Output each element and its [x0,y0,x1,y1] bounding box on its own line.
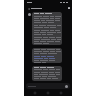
button[interactable]: Back [33,91,37,95]
button[interactable]: Recents [59,91,63,95]
button[interactable] [32,48,62,63]
button[interactable] [32,12,62,45]
button[interactable] [32,66,62,81]
button[interactable]: Profile [68,7,70,9]
button[interactable] [26,83,70,89]
button[interactable]: Back [27,7,30,10]
button[interactable]: Home [46,91,50,95]
